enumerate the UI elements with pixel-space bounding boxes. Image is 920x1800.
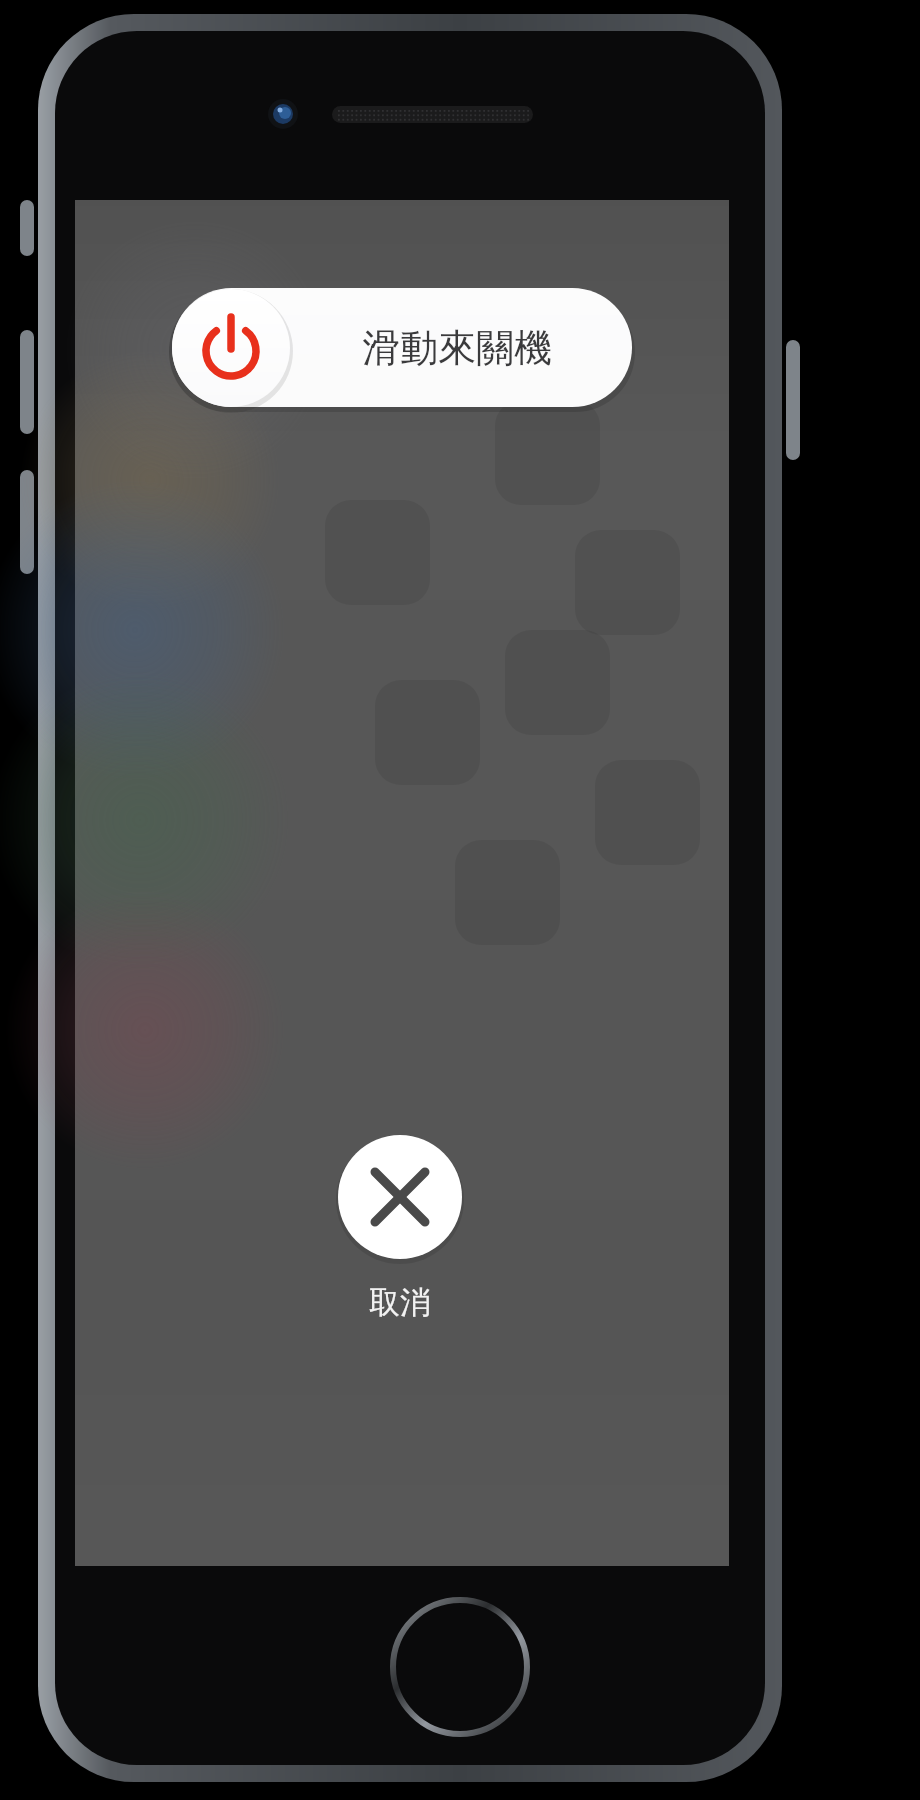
button[interactable]: 滑動來關機 xyxy=(172,288,632,407)
button[interactable]: 取消 Cancel xyxy=(318,1135,482,1354)
